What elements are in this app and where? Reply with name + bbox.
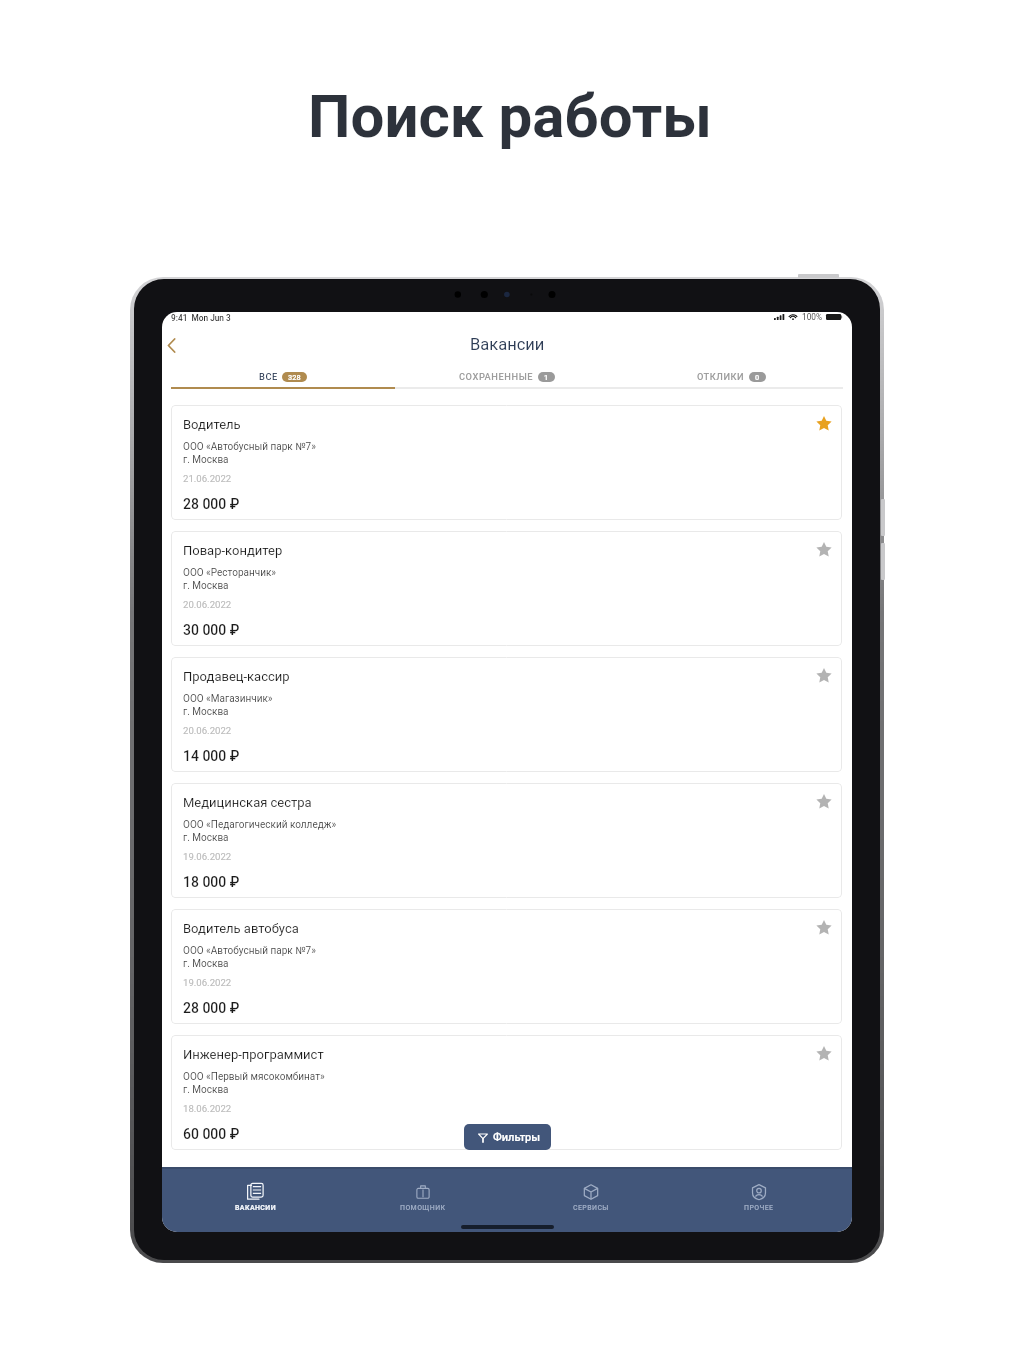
staticText: Инженер-программист — [183, 1047, 324, 1062]
button[interactable]: ВСЕ — [171, 366, 395, 387]
staticText: ООО «Ресторанчик» — [183, 567, 277, 579]
staticText: ООО «Автобусный парк №7» — [183, 945, 316, 957]
staticText: 21.06.2022 — [183, 473, 232, 484]
button[interactable]: ВАКАНСИИ — [171, 1183, 339, 1212]
staticText: ООО «Педагогический колледж» — [183, 819, 337, 831]
button[interactable]: Фильтры — [464, 1124, 551, 1150]
staticText: 28 000 ₽ — [183, 496, 240, 512]
button[interactable]: Назад — [162, 333, 183, 357]
staticText: Поиск работы — [308, 81, 712, 151]
staticText: 20.06.2022 — [183, 599, 232, 610]
staticText: 28 000 ₽ — [183, 1000, 240, 1016]
staticText: г. Москва — [183, 580, 229, 592]
button[interactable]: Водитель автобуса — [171, 909, 842, 1024]
staticText: 328 — [288, 373, 301, 382]
staticText: Вакансии — [470, 335, 545, 354]
staticText: ПОМОЩНИК — [400, 1204, 446, 1212]
button[interactable]: ОТКЛИКИ — [619, 366, 843, 387]
button[interactable]: В избранное — [813, 1043, 835, 1065]
button[interactable]: Повар-кондитер — [171, 531, 842, 646]
staticText: 18.06.2022 — [183, 1103, 232, 1114]
staticText: Повар-кондитер — [183, 543, 283, 558]
staticText: Продавец-кассир — [183, 669, 290, 684]
staticText: г. Москва — [183, 1084, 229, 1096]
button[interactable]: Водитель — [171, 405, 842, 520]
staticText: 19.06.2022 — [183, 851, 232, 862]
staticText: г. Москва — [183, 958, 229, 970]
staticText: 14 000 ₽ — [183, 748, 240, 764]
button[interactable]: Продавец-кассир — [171, 657, 842, 772]
button[interactable]: Медицинская сестра — [171, 783, 842, 898]
staticText: Водитель — [183, 417, 241, 432]
staticText: ВСЕ — [259, 371, 278, 382]
staticText: 9:41 Mon Jun 3 — [171, 313, 231, 323]
staticText: ОТКЛИКИ — [697, 371, 745, 382]
staticText: СОХРАНЕННЫЕ — [459, 371, 534, 382]
staticText: 1 — [544, 373, 549, 382]
button[interactable]: Инженер-программист — [171, 1035, 842, 1150]
staticText: 19.06.2022 — [183, 977, 232, 988]
staticText: 18 000 ₽ — [183, 874, 240, 890]
button[interactable]: В избранное — [813, 791, 835, 813]
staticText: г. Москва — [183, 832, 229, 844]
staticText: СЕРВИСЫ — [573, 1204, 609, 1212]
staticText: ООО «Первый мясокомбинат» — [183, 1071, 325, 1083]
staticText: Медицинская сестра — [183, 795, 312, 810]
button[interactable]: В избранное — [813, 413, 835, 435]
staticText: Фильтры — [493, 1131, 541, 1144]
staticText: 20.06.2022 — [183, 725, 232, 736]
staticText: ПРОЧЕЕ — [744, 1204, 774, 1212]
staticText: ООО «Автобусный парк №7» — [183, 441, 316, 453]
staticText: ВАКАНСИИ — [235, 1204, 276, 1212]
button[interactable]: ПРОЧЕЕ — [675, 1183, 843, 1212]
staticText: Водитель автобуса — [183, 921, 299, 936]
staticText: 30 000 ₽ — [183, 622, 240, 638]
button[interactable]: В избранное — [813, 539, 835, 561]
staticText: 0 — [755, 373, 760, 382]
staticText: 60 000 ₽ — [183, 1126, 240, 1142]
button[interactable]: В избранное — [813, 917, 835, 939]
staticText: г. Москва — [183, 706, 229, 718]
button[interactable]: ПОМОЩНИК — [339, 1183, 507, 1212]
staticText: 100% — [802, 312, 823, 322]
button[interactable]: СЕРВИСЫ — [507, 1183, 675, 1212]
button[interactable]: В избранное — [813, 665, 835, 687]
staticText: ООО «Магазинчик» — [183, 693, 273, 705]
button[interactable]: СОХРАНЕННЫЕ — [395, 366, 619, 387]
staticText: г. Москва — [183, 454, 229, 466]
